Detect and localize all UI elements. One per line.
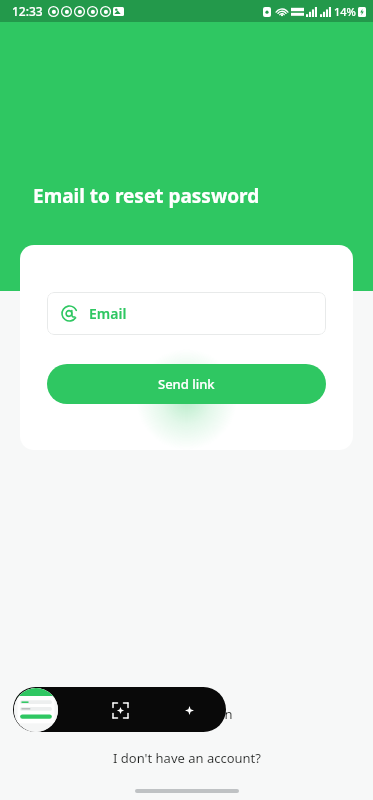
- staticText: Email to reset password: [33, 183, 260, 209]
- button[interactable]: Crop screenshot: [108, 698, 132, 722]
- staticText: Email: [89, 304, 127, 323]
- staticText: 12:33: [12, 3, 43, 19]
- other: Email: [61, 305, 78, 322]
- staticText: Return to login: [141, 705, 233, 723]
- button[interactable]: Email: [47, 292, 326, 335]
- button[interactable]: Return to login: [0, 703, 373, 725]
- button[interactable]: I don't have an account?: [0, 747, 373, 769]
- staticText: 14%: [334, 4, 356, 19]
- button[interactable]: Magic edit: [178, 699, 200, 721]
- staticText: I don't have an account?: [113, 749, 261, 767]
- staticText: Send link: [158, 375, 215, 393]
- button[interactable]: Screenshot preview: [14, 688, 58, 732]
- button[interactable]: Send link: [47, 364, 326, 404]
